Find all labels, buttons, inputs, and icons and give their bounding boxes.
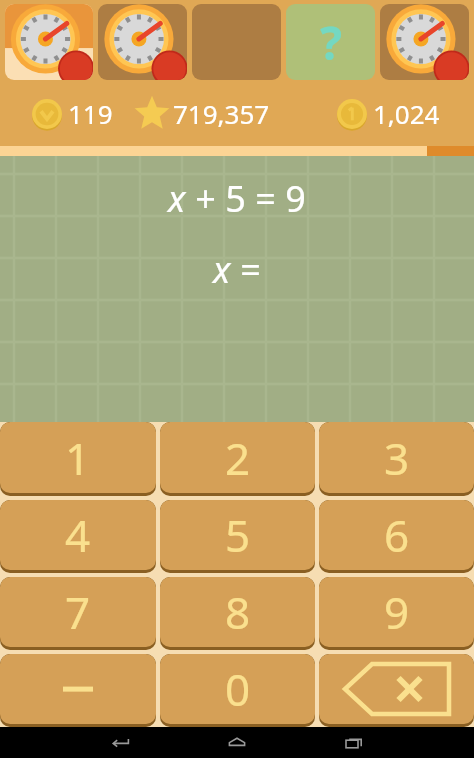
button[interactable]: 0: [160, 654, 315, 727]
staticText: 2: [225, 428, 251, 488]
button[interactable]: 7: [0, 577, 156, 650]
staticText: 8: [225, 582, 251, 642]
staticText: x: [168, 174, 186, 223]
staticText: =: [231, 245, 261, 294]
staticText: 4: [65, 505, 91, 565]
staticText: 7: [65, 582, 91, 642]
staticText: + 5 = 9: [186, 174, 306, 223]
button[interactable]: 1: [0, 422, 156, 496]
staticText: 719,357: [173, 96, 270, 131]
staticText: 1: [65, 428, 91, 488]
button[interactable]: 2: [160, 422, 315, 496]
button[interactable]: Power-up slot: [380, 4, 469, 80]
button[interactable]: Recents: [337, 727, 371, 758]
button[interactable]: 3: [319, 422, 474, 496]
button[interactable]: Back: [103, 727, 137, 758]
button[interactable]: 119: [30, 96, 113, 131]
button[interactable]: 9: [319, 577, 474, 650]
button[interactable]: [0, 654, 156, 727]
button[interactable]: Power-up slot: [5, 4, 93, 80]
button[interactable]: Power-up slot: [98, 4, 187, 80]
staticText: 119: [68, 96, 113, 131]
staticText: 1,024: [373, 96, 440, 131]
button[interactable]: 5: [160, 500, 315, 573]
button[interactable]: 1,024: [335, 96, 440, 131]
button[interactable]: Mystery power-up: [286, 4, 375, 80]
staticText: 6: [384, 505, 410, 565]
button[interactable]: Home: [220, 727, 254, 758]
staticText: 5: [225, 505, 251, 565]
button[interactable]: 719,357: [135, 96, 270, 131]
button[interactable]: 6: [319, 500, 474, 573]
staticText: x: [213, 245, 231, 294]
button[interactable]: 8: [160, 577, 315, 650]
staticText: ?: [320, 11, 342, 74]
staticText: 9: [384, 582, 410, 642]
staticText: 3: [384, 428, 410, 488]
button[interactable]: Backspace: [319, 654, 474, 727]
button[interactable]: Power-up slot: [192, 4, 281, 80]
staticText: 0: [225, 659, 251, 719]
button[interactable]: 4: [0, 500, 156, 573]
